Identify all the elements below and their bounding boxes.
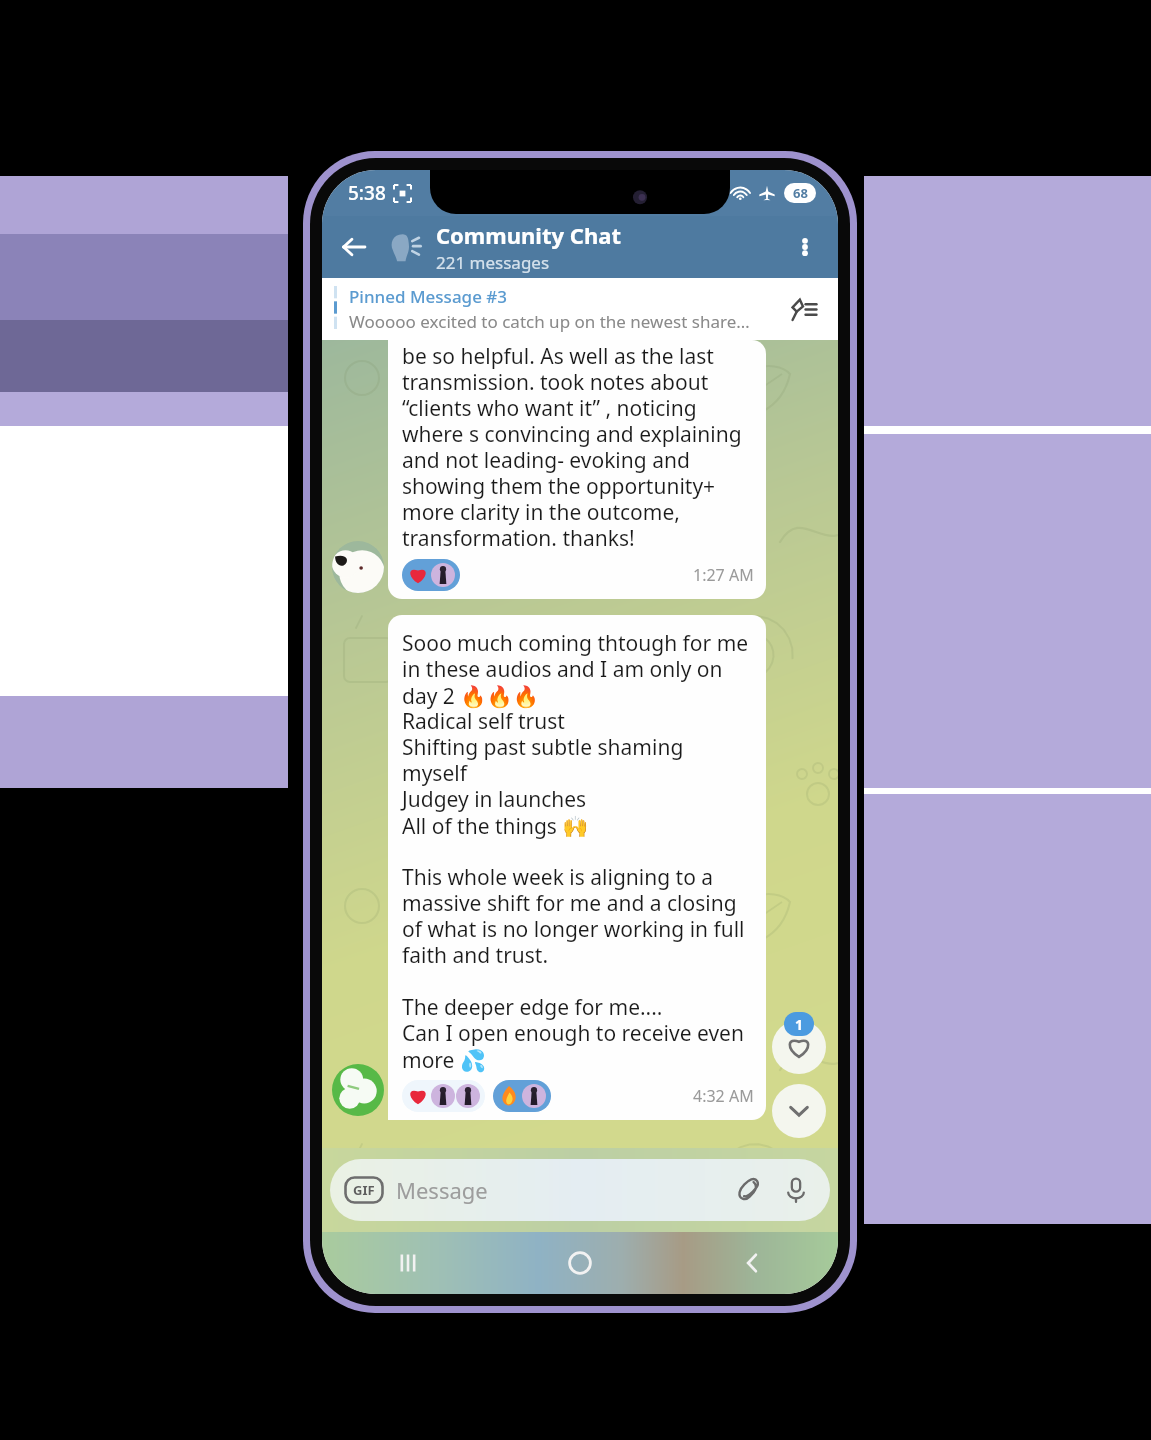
staticText: Pinned Message #3 [349, 285, 508, 308]
staticText: GIF [353, 1181, 375, 1199]
staticText: Message [396, 1175, 488, 1205]
button[interactable]: be so helpful. As well as the last trans… [388, 340, 766, 599]
button[interactable]: Reactions [772, 1020, 826, 1074]
button[interactable]: Pinned messages list [784, 289, 824, 329]
staticText: be so helpful. As well as the last trans… [402, 342, 742, 553]
staticText: 1:27 AM [693, 564, 754, 586]
staticText: 4:32 AM [693, 1085, 754, 1107]
button[interactable]: Chat avatar [382, 226, 424, 268]
staticText: Community Chat [436, 220, 621, 250]
button[interactable]: Heart reaction [402, 1080, 485, 1112]
staticText: Wooooo excited to catch up on the newest… [349, 310, 750, 333]
button[interactable]: Heart reaction [402, 559, 460, 591]
button[interactable]: Recents [380, 1235, 436, 1291]
button[interactable]: Scroll to bottom [772, 1084, 826, 1138]
button[interactable]: Back [724, 1235, 780, 1291]
staticText: 68 [793, 184, 808, 202]
button[interactable]: Home [552, 1235, 608, 1291]
staticText: 5:38 [348, 180, 386, 206]
staticText: 1 [795, 1015, 804, 1034]
button[interactable]: GIF [344, 1176, 384, 1204]
button[interactable]: Community Chat [436, 220, 782, 274]
button[interactable]: Sender avatar [332, 541, 384, 593]
button[interactable]: GIF [330, 1159, 830, 1221]
button[interactable]: More options [782, 224, 828, 270]
staticText: Sooo much coming thtough for me in these… [402, 629, 749, 1074]
button[interactable]: Sender avatar [332, 1064, 384, 1116]
staticText: 221 messages [436, 251, 550, 274]
button[interactable]: Record voice message [776, 1170, 816, 1210]
button[interactable]: Fire reaction [493, 1080, 551, 1112]
button[interactable]: Back [330, 223, 378, 271]
button[interactable]: Attach [728, 1170, 768, 1210]
button[interactable]: Sooo much coming thtough for me in these… [388, 615, 766, 1120]
button[interactable]: Pinned Message #3 [322, 278, 838, 340]
